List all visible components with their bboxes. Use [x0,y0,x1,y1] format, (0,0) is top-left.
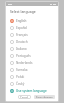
staticText: English [16,19,27,23]
staticText: Português [16,54,31,58]
button[interactable]: Deutsch [9,38,55,45]
staticText: Use system language [16,89,47,93]
button[interactable]: Italiano [9,45,55,52]
button[interactable]: Use system language [9,87,55,94]
button[interactable]: Polski [9,73,55,80]
staticText: Nederlands [16,61,33,65]
staticText: Español [16,26,28,30]
staticText: Italiano [16,47,27,51]
staticText: Select language [10,9,36,14]
button[interactable]: Cancel [18,95,31,99]
staticText: Deutsch [16,40,28,44]
button[interactable]: Nederlands [9,59,55,66]
button[interactable]: Český [9,80,55,87]
button[interactable]: English [9,17,55,24]
staticText: Save changes [36,96,53,98]
staticText: Cancel [20,96,29,98]
button[interactable]: Español [9,24,55,31]
button[interactable]: Svenska [9,66,55,73]
staticText: Polski [16,75,25,79]
button[interactable]: Save changes [34,95,55,99]
button[interactable]: Français [9,31,55,38]
staticText: Français [16,33,28,37]
staticText: Český [16,82,25,86]
staticText: Svenska [16,68,28,72]
button[interactable]: Português [9,52,55,59]
